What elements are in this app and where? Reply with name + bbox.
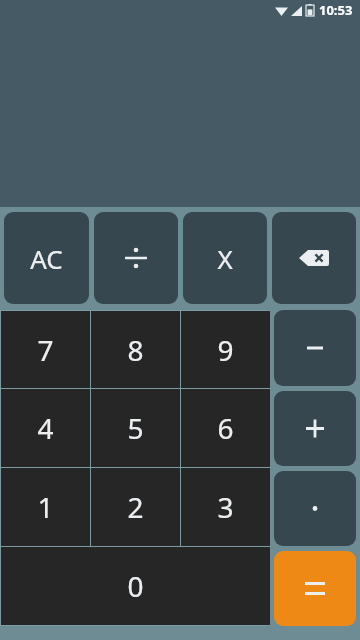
button[interactable]: 2 (91, 468, 180, 546)
button[interactable]: 1 (1, 468, 90, 546)
staticText: 1 (37, 488, 54, 526)
button[interactable]: X (183, 212, 267, 304)
staticText: 8 (127, 331, 144, 369)
staticText: 0 (127, 567, 144, 605)
button[interactable]: 6 (181, 389, 270, 467)
staticText: 9 (217, 331, 234, 369)
button[interactable]: Equals (274, 551, 356, 626)
button[interactable]: Decimal point (274, 471, 356, 546)
staticText: 10:53 (319, 1, 353, 19)
button[interactable]: Divide (94, 212, 178, 304)
staticText: AC (30, 241, 63, 276)
button[interactable]: Backspace (272, 212, 356, 304)
staticText: 4 (37, 409, 54, 447)
staticText: 7 (37, 331, 54, 369)
button[interactable]: Minus (274, 310, 356, 386)
button[interactable]: 5 (91, 389, 180, 467)
button[interactable]: 9 (181, 311, 270, 388)
button[interactable]: 7 (1, 311, 90, 388)
button[interactable]: AC (4, 212, 89, 304)
button[interactable]: 8 (91, 311, 180, 388)
button[interactable]: 4 (1, 389, 90, 467)
staticText: 6 (217, 409, 234, 447)
button[interactable]: 3 (181, 468, 270, 546)
button[interactable]: 0 (1, 547, 270, 625)
staticText: 3 (217, 488, 234, 526)
staticText: 2 (127, 488, 144, 526)
button[interactable]: Plus (274, 391, 356, 466)
staticText: 5 (127, 409, 144, 447)
staticText: X (217, 241, 233, 276)
